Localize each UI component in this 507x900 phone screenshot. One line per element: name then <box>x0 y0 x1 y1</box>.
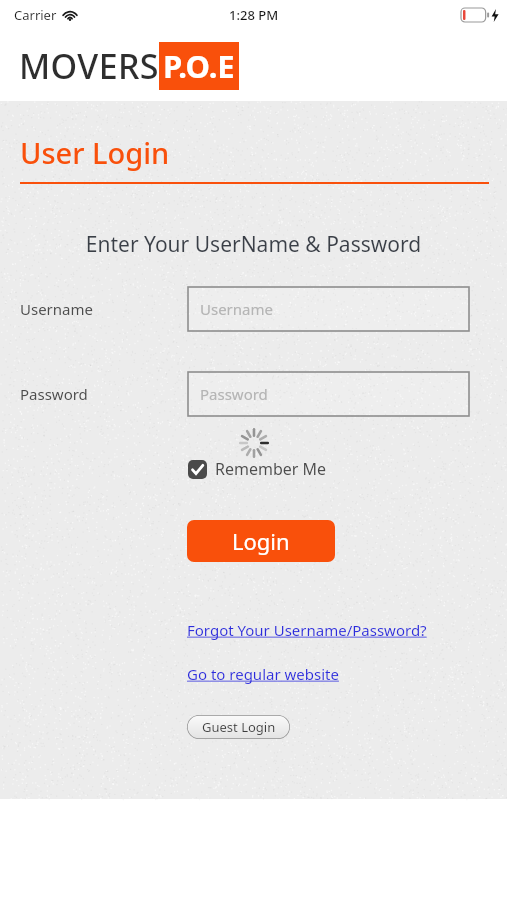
staticText: Guest Login <box>202 718 276 736</box>
button[interactable]: Forgot Your Username/Password? <box>187 620 427 640</box>
staticText: Enter Your UserName & Password <box>0 230 507 259</box>
staticText: P.O.E <box>163 45 235 87</box>
button[interactable]: Login <box>187 520 335 562</box>
button[interactable]: Username <box>188 287 469 331</box>
staticText: MOVERS <box>19 43 159 89</box>
staticText: Remember Me <box>215 458 327 480</box>
staticText: Go to regular website <box>187 664 339 684</box>
staticText: Carrier <box>14 6 57 24</box>
staticText: Forgot Your Username/Password? <box>187 620 427 640</box>
button[interactable]: Go to regular website <box>187 664 339 684</box>
staticText: Password <box>20 384 88 404</box>
button[interactable]: Guest Login <box>187 715 290 739</box>
staticText: Password <box>200 384 268 404</box>
staticText: Username <box>20 299 93 319</box>
button[interactable]: Remember Me <box>188 458 327 480</box>
staticText: User Login <box>20 133 170 172</box>
staticText: Username <box>200 299 273 319</box>
staticText: Login <box>232 526 290 556</box>
button[interactable]: Password <box>188 372 469 416</box>
staticText: 1:28 PM <box>229 6 279 24</box>
